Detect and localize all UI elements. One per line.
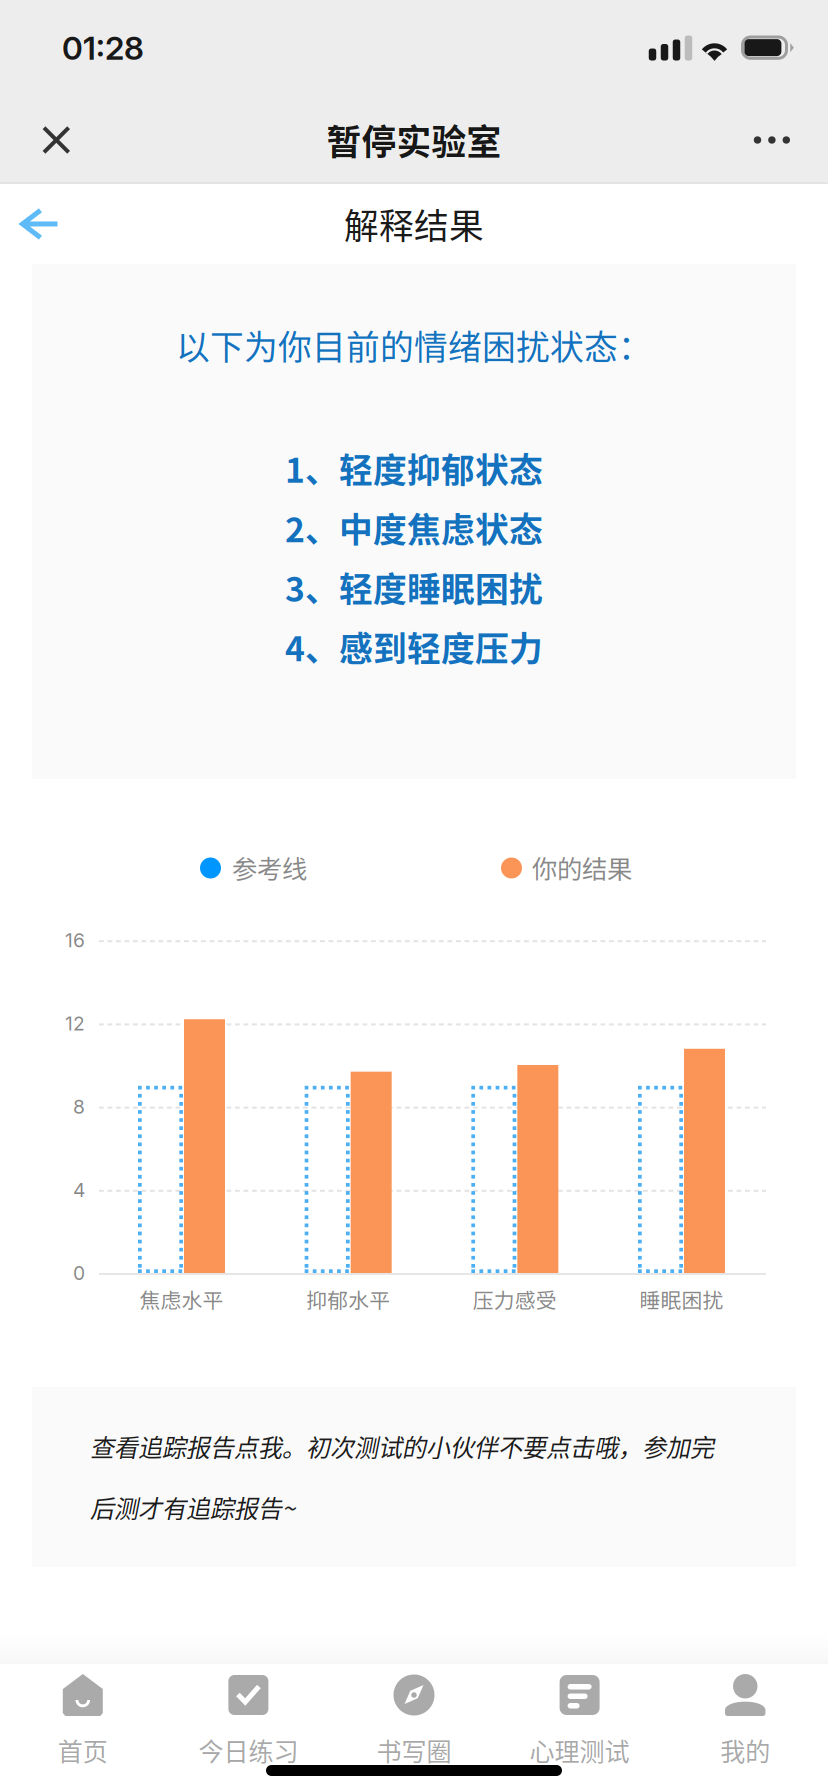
- button[interactable]: 今日练习: [166, 1664, 331, 1792]
- staticText: 4、感到轻度压力: [285, 622, 543, 671]
- button[interactable]: 首页: [0, 1664, 166, 1792]
- button[interactable]: 更多: [728, 96, 828, 184]
- button[interactable]: 返回: [0, 184, 86, 264]
- staticText: 3、轻度睡眠困扰: [285, 563, 543, 611]
- staticText: 01:28: [62, 29, 144, 67]
- staticText: 查看追踪报告点我。初次测试的小伙伴不要点击哦，参加完: [90, 1428, 714, 1463]
- staticText: 暂停实验室: [326, 115, 501, 165]
- staticText: 今日练习: [198, 1732, 298, 1768]
- staticText: 睡眠困扰: [639, 1284, 723, 1314]
- staticText: 4: [73, 1178, 85, 1201]
- button[interactable]: 书写圈: [331, 1664, 497, 1792]
- staticText: 心理测试: [530, 1732, 630, 1768]
- button[interactable]: 心理测试: [497, 1664, 662, 1792]
- staticText: 1、轻度抑郁状态: [285, 444, 543, 492]
- staticText: 以下为你目前的情绪困扰状态：: [176, 321, 652, 369]
- staticText: 你的结果: [532, 849, 632, 886]
- staticText: 16: [65, 929, 85, 952]
- staticText: 焦虑水平: [139, 1284, 223, 1314]
- staticText: 抑郁水平: [306, 1284, 390, 1314]
- staticText: 0: [73, 1261, 85, 1285]
- staticText: 8: [73, 1095, 85, 1118]
- staticText: 12: [65, 1012, 85, 1035]
- staticText: 解释结果: [344, 199, 484, 249]
- button[interactable]: 我的: [662, 1664, 828, 1792]
- button[interactable]: 关闭: [0, 96, 97, 184]
- staticText: 压力感受: [473, 1284, 557, 1314]
- staticText: 首页: [58, 1732, 108, 1768]
- staticText: 参考线: [232, 849, 307, 886]
- staticText: 后测才有追踪报告~: [90, 1489, 295, 1524]
- staticText: 书写圈: [376, 1732, 451, 1768]
- staticText: 我的: [720, 1732, 770, 1768]
- staticText: 2、中度焦虑状态: [285, 503, 543, 552]
